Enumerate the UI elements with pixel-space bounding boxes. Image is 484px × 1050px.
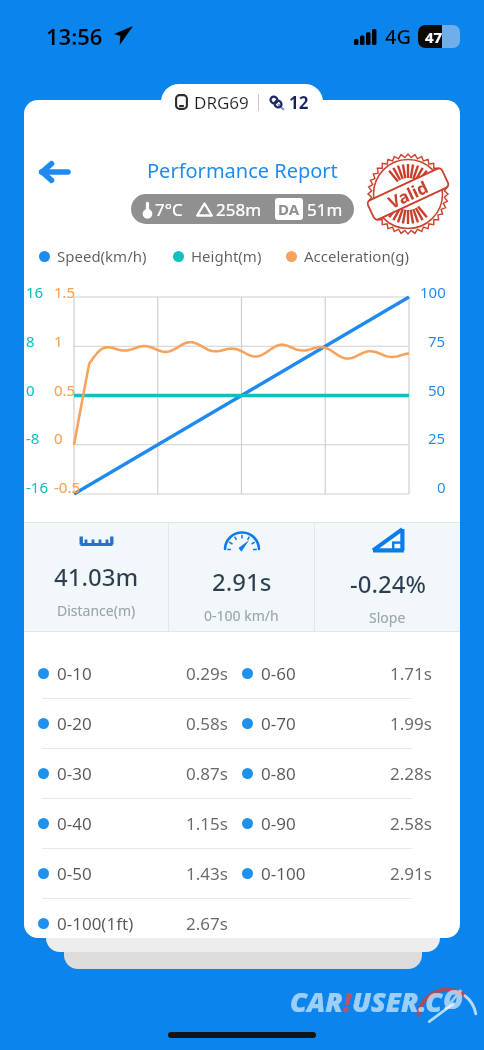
staticText: DA bbox=[278, 199, 300, 219]
staticText: 1.43s bbox=[186, 862, 228, 885]
staticText: 2.58s bbox=[390, 812, 432, 835]
staticText: 2.91s bbox=[212, 565, 272, 598]
staticText: 2.28s bbox=[390, 762, 432, 785]
button[interactable]: -0.24% bbox=[315, 522, 460, 632]
button[interactable]: 2.91s bbox=[169, 522, 314, 632]
button[interactable]: 0-50 bbox=[38, 849, 446, 898]
staticText: Acceleration(g) bbox=[304, 246, 409, 266]
button[interactable]: 41.03m bbox=[24, 522, 168, 632]
staticText: Speed(km/h) bbox=[57, 246, 147, 266]
staticText: 0-100(1ft) bbox=[57, 912, 134, 935]
staticText: -0.24% bbox=[350, 567, 426, 600]
staticText: 258m bbox=[216, 198, 262, 221]
staticText: 47 bbox=[425, 27, 443, 47]
staticText: -0.5 bbox=[54, 477, 84, 497]
button[interactable]: 0-40 bbox=[38, 799, 446, 848]
staticText: 51m bbox=[307, 198, 343, 221]
staticText: 2.67s bbox=[186, 912, 228, 935]
staticText: 12 bbox=[289, 91, 309, 114]
button[interactable]: 7°C bbox=[131, 194, 354, 224]
staticText: 8 bbox=[26, 331, 52, 351]
button[interactable]: 0-100(1ft) bbox=[38, 899, 446, 938]
staticText: 0 bbox=[437, 477, 446, 497]
staticText: 0.58s bbox=[186, 712, 228, 735]
button[interactable]: DRG69 bbox=[161, 84, 323, 120]
staticText: 1.99s bbox=[390, 712, 432, 735]
staticText: 0-10 bbox=[57, 662, 92, 685]
staticText: Slope bbox=[369, 608, 406, 627]
staticText: USER.C bbox=[352, 983, 443, 1020]
staticText: 1.71s bbox=[390, 662, 432, 685]
staticText: 0-40 bbox=[57, 812, 92, 835]
staticText: -8 bbox=[26, 428, 52, 448]
staticText: 0 bbox=[54, 428, 84, 448]
staticText: 2.91s bbox=[390, 862, 432, 885]
staticText: 0 bbox=[26, 380, 52, 400]
staticText: 1.5 bbox=[54, 282, 84, 302]
staticText: 0-80 bbox=[261, 762, 296, 785]
staticText: Distance(m) bbox=[57, 601, 136, 620]
staticText: 1.15s bbox=[186, 812, 228, 835]
staticText: 0.29s bbox=[186, 662, 228, 685]
staticText: ØM bbox=[443, 980, 476, 1022]
staticText: 50 bbox=[428, 380, 446, 400]
staticText: 100 bbox=[420, 282, 446, 302]
staticText: 7°C bbox=[155, 198, 183, 221]
button[interactable]: 0-20 bbox=[38, 699, 446, 748]
staticText: 16 bbox=[26, 282, 52, 302]
staticText: 0.87s bbox=[186, 762, 228, 785]
staticText: 0-100 km/h bbox=[204, 606, 279, 625]
staticText: 75 bbox=[428, 331, 446, 351]
staticText: 0-20 bbox=[57, 712, 92, 735]
staticText: Valid bbox=[384, 175, 432, 214]
staticText: 0.5 bbox=[54, 380, 84, 400]
staticText: 0-70 bbox=[261, 712, 296, 735]
staticText: DRG69 bbox=[194, 91, 249, 114]
staticText: 13:56 bbox=[46, 21, 103, 51]
staticText: -16 bbox=[26, 477, 52, 497]
staticText: 41.03m bbox=[54, 560, 139, 593]
staticText: CAR bbox=[290, 983, 343, 1020]
staticText: 0-50 bbox=[57, 862, 92, 885]
staticText: 4G bbox=[385, 23, 411, 50]
staticText: 25 bbox=[428, 428, 446, 448]
button[interactable]: Valid report stamp bbox=[365, 151, 451, 237]
staticText: 0-90 bbox=[261, 812, 296, 835]
staticText: Height(m) bbox=[191, 246, 262, 266]
staticText: 0-60 bbox=[261, 662, 296, 685]
button[interactable]: 0-30 bbox=[38, 749, 446, 798]
staticText: ! bbox=[343, 983, 352, 1020]
staticText: 0-30 bbox=[57, 762, 92, 785]
staticText: 0-100 bbox=[261, 862, 306, 885]
button[interactable]: Back bbox=[30, 148, 78, 196]
staticText: 1 bbox=[54, 331, 84, 351]
staticText: Performance Report bbox=[147, 157, 338, 184]
button[interactable]: 0-10 bbox=[38, 649, 446, 698]
